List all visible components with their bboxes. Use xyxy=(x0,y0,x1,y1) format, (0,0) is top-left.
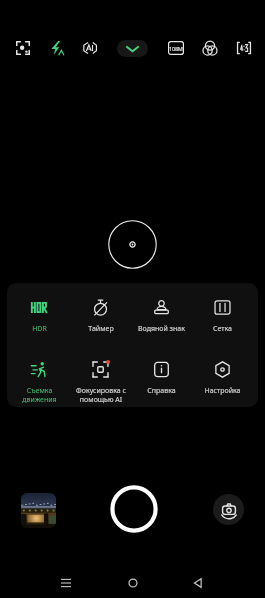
button[interactable]: Back xyxy=(184,569,212,597)
staticText: 108M xyxy=(169,45,183,52)
button[interactable]: AI scene detection xyxy=(73,31,106,64)
button[interactable]: HDR xyxy=(9,283,70,345)
staticText: Таймер xyxy=(88,324,114,334)
button[interactable]: Scan code xyxy=(6,31,39,64)
button[interactable]: Съемка движения xyxy=(9,345,70,407)
staticText: Настройка xyxy=(204,386,241,396)
button[interactable]: Aspect ratio 4 to 3 xyxy=(227,31,260,64)
staticText: Водяной знак xyxy=(138,324,185,334)
button[interactable]: Фокусировка с помощью AI xyxy=(70,345,131,407)
button[interactable]: Сетка xyxy=(192,283,253,345)
button[interactable]: Настройка xyxy=(192,345,253,407)
button[interactable]: More settings xyxy=(117,40,148,57)
button[interactable]: Водяной знак xyxy=(131,283,192,345)
staticText: Сетка xyxy=(213,324,232,334)
staticText: Фокусировка с помощью AI xyxy=(76,386,126,404)
button[interactable]: Справка xyxy=(131,345,192,407)
staticText: Справка xyxy=(147,386,176,396)
staticText: Съемка движения xyxy=(22,386,57,404)
button[interactable]: Gallery xyxy=(21,493,56,528)
button[interactable]: Take photo xyxy=(110,485,158,533)
button[interactable]: 108 megapixels xyxy=(168,41,184,55)
button[interactable]: Recent apps xyxy=(52,569,80,597)
button[interactable]: Home xyxy=(119,569,147,597)
button[interactable]: Color filters xyxy=(193,31,226,64)
button[interactable]: Таймер xyxy=(70,283,131,345)
staticText: HDR xyxy=(32,324,47,334)
button[interactable]: Switch camera xyxy=(213,494,244,525)
button[interactable]: Flash auto xyxy=(40,31,73,64)
